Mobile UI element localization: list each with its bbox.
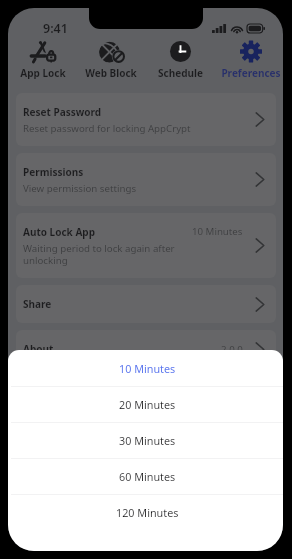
button[interactable]: 30 Minutes: [8, 423, 283, 458]
button[interactable]: App Lock: [9, 38, 77, 79]
button[interactable]: About: [16, 330, 276, 368]
button[interactable]: Permissions: [16, 153, 276, 206]
button[interactable]: 60 Minutes: [8, 459, 283, 494]
button[interactable]: 10 Minutes: [8, 350, 283, 386]
staticText: Preferences: [221, 66, 281, 79]
staticText: Web Block: [85, 66, 137, 79]
button[interactable]: Reset Password: [16, 93, 276, 146]
button[interactable]: Schedule: [146, 38, 214, 79]
staticText: Schedule: [158, 66, 203, 79]
staticText: 30 Minutes: [119, 433, 176, 448]
button[interactable]: 20 Minutes: [8, 387, 283, 422]
button[interactable]: Preferences: [214, 38, 282, 79]
staticText: 120 Minutes: [116, 505, 179, 520]
staticText: 60 Minutes: [119, 469, 176, 484]
staticText: Permissions: [23, 165, 84, 179]
staticText: 20 Minutes: [119, 397, 176, 412]
staticText: 9:41: [43, 20, 68, 36]
staticText: Reset Password: [23, 105, 102, 119]
staticText: About: [23, 342, 54, 356]
staticText: 2.0.0: [221, 343, 243, 356]
staticText: Waiting period to lock again after unloc…: [23, 242, 196, 267]
button[interactable]: 120 Minutes: [8, 495, 283, 530]
staticText: Share: [23, 297, 52, 311]
staticText: 10 Minutes: [192, 225, 243, 238]
button[interactable]: Auto Lock App: [16, 213, 276, 278]
button[interactable]: Web Block: [77, 38, 145, 79]
staticText: Reset password for locking AppCrypt: [23, 122, 191, 135]
staticText: App Lock: [20, 66, 66, 79]
button[interactable]: Share: [16, 285, 276, 323]
staticText: Auto Lock App: [23, 225, 95, 239]
staticText: View permission settings: [23, 182, 137, 195]
staticText: 10 Minutes: [119, 361, 176, 376]
